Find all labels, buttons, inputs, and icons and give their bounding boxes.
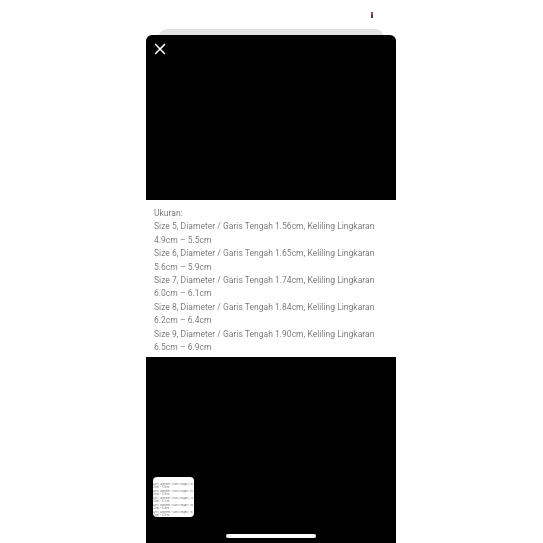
staticText: Size 6, Diameter / Garis Tengah 1.65cm, … — [153, 490, 193, 493]
staticText: Size 8, Diameter / Garis Tengah 1.84cm, … — [154, 302, 375, 312]
staticText: 6.2cm – 6.4cm — [153, 507, 170, 510]
staticText: Size 7, Diameter / Garis Tengah 1.74cm, … — [153, 497, 193, 500]
staticText: Size 9, Diameter / Garis Tengah 1.90cm, … — [154, 329, 375, 339]
button[interactable]: Size chart thumbnail — [153, 477, 194, 517]
staticText: Size 8, Diameter / Garis Tengah 1.84cm, … — [153, 504, 193, 507]
staticText: Size 9, Diameter / Garis Tengah 1.90cm, … — [153, 511, 193, 514]
staticText: 5.6cm – 5.9cm — [153, 493, 170, 496]
staticText: Ukuran: — [154, 208, 183, 218]
staticText: 6.0cm – 6.1cm — [154, 288, 212, 298]
staticText: 4.9cm – 5.5cm — [153, 486, 170, 489]
staticText: 6.5cm – 6.9cm — [154, 342, 212, 352]
staticText: Size 5, Diameter / Garis Tengah 1.56cm, … — [153, 483, 193, 486]
staticText: 6.0cm – 6.1cm — [153, 500, 170, 503]
staticText: 4.9cm – 5.5cm — [154, 235, 212, 245]
staticText: 6.2cm – 6.4cm — [154, 315, 212, 325]
staticText: 6.5cm – 6.9cm — [153, 514, 170, 517]
staticText: 5.6cm – 5.9cm — [154, 262, 212, 272]
button[interactable]: Close — [147, 36, 173, 62]
staticText: Size 5, Diameter / Garis Tengah 1.56cm, … — [154, 221, 375, 231]
staticText: Size 7, Diameter / Garis Tengah 1.74cm, … — [154, 275, 375, 285]
staticText: Size 6, Diameter / Garis Tengah 1.65cm, … — [154, 248, 375, 258]
